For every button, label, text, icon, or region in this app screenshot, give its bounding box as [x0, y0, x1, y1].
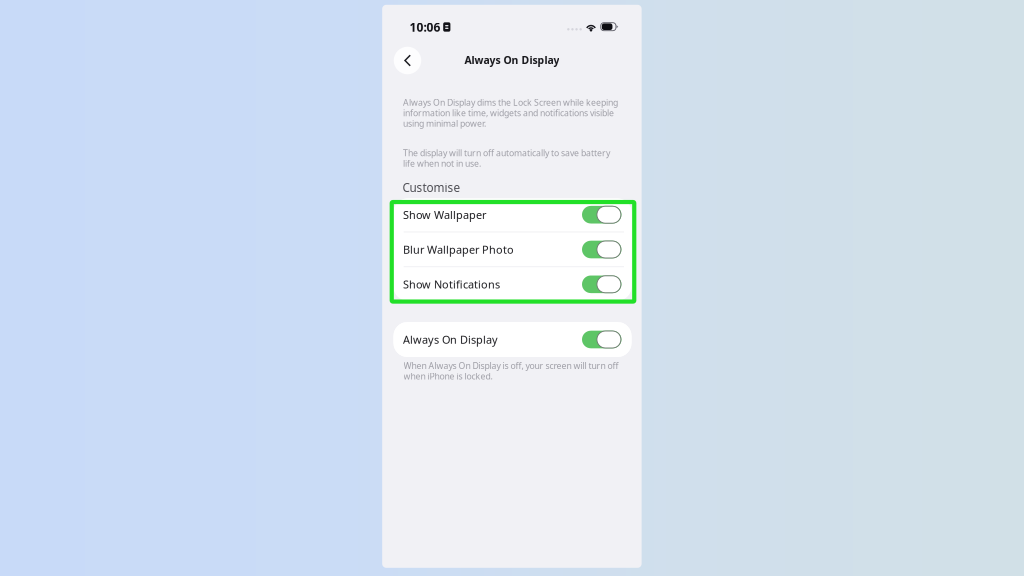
button[interactable]: Show Notifications — [393, 267, 631, 301]
staticText: The display will turn off automatically … — [403, 147, 610, 159]
staticText: life when not in use. — [403, 157, 481, 169]
staticText: Always On Display — [464, 53, 559, 67]
staticText: Blur Wallpaper Photo — [403, 242, 514, 257]
button[interactable]: Show Wallpaper — [393, 198, 631, 232]
staticText: Always On Display — [403, 332, 498, 347]
staticText: information like time, widgets and notif… — [403, 107, 614, 119]
button[interactable]: Blur Wallpaper Photo — [393, 232, 631, 266]
staticText: using minimal power. — [403, 118, 486, 129]
staticText: 10:06 — [410, 19, 441, 35]
staticText: When Always On Display is off, your scre… — [403, 360, 618, 372]
button[interactable]: Always On Display — [393, 322, 631, 356]
staticText: when iPhone is locked. — [403, 370, 492, 382]
staticText: Show Notifications — [403, 277, 500, 292]
staticText: Always On Display dims the Lock Screen w… — [403, 97, 618, 108]
button[interactable]: Back — [394, 47, 421, 74]
staticText: Customise — [402, 179, 460, 195]
staticText: Show Wallpaper — [403, 207, 486, 222]
